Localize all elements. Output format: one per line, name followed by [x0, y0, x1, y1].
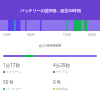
staticText: 12:00 — [63, 33, 71, 37]
staticText: 50 % — [3, 79, 14, 85]
button[interactable]: 0 % — [50, 79, 100, 91]
button[interactable]: 1分17秒 — [0, 62, 50, 74]
staticText: 12:00 — [3, 33, 11, 37]
staticText: バッテリー — [6, 87, 22, 91]
staticText: バッテリーの使用量 - 過去24時間 — [20, 8, 81, 13]
staticText: 0 % — [53, 79, 61, 85]
staticText: 1分17秒 — [3, 62, 21, 68]
staticText: 充電済み — [56, 87, 69, 91]
staticText: スクリーン — [6, 70, 22, 74]
button[interactable]: 50 % — [0, 79, 50, 91]
staticText: アイドル — [56, 70, 69, 74]
staticText: 4分29秒 — [53, 62, 71, 68]
staticText: 06:00 — [27, 33, 35, 37]
button[interactable]: 4分29秒 — [50, 62, 100, 74]
staticText: 06:00 — [88, 33, 96, 37]
staticText: 合計使用時間 — [0, 43, 100, 48]
button[interactable]: バッテリーの使用量 - 過去24時間 — [0, 0, 100, 20]
